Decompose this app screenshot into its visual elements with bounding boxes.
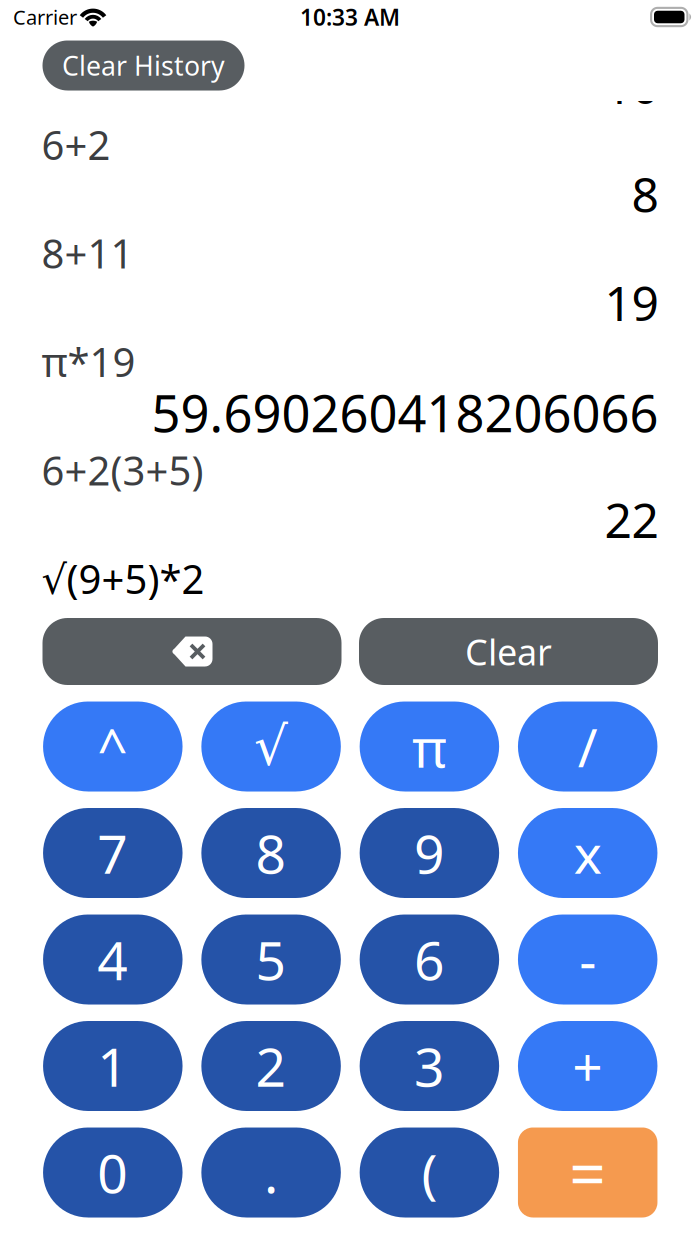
staticText: 8+11 (41, 226, 133, 280)
button[interactable]: 9 (360, 808, 499, 898)
button[interactable]: ( (360, 1127, 499, 1217)
button[interactable]: = (518, 1127, 657, 1217)
button[interactable]: / (518, 701, 657, 791)
button[interactable]: 2 (201, 1021, 341, 1111)
staticText: = (569, 1130, 606, 1215)
staticText: ^ (97, 711, 128, 782)
staticText: 4+6 (41, 9, 110, 63)
staticText: 59.690260418206066 (151, 379, 658, 446)
button[interactable]: x (518, 808, 657, 898)
button[interactable]: Clear (359, 618, 658, 685)
button[interactable]: 4 (43, 914, 183, 1004)
staticText: + (572, 1031, 603, 1101)
button[interactable]: 1 (43, 1021, 183, 1111)
staticText: 8 (631, 162, 658, 226)
staticText: x (574, 818, 602, 888)
button[interactable]: 8 (201, 808, 341, 898)
staticText: 6+2 (41, 118, 110, 171)
button[interactable]: Clear History (42, 40, 244, 90)
staticText: 22 (604, 487, 658, 551)
button[interactable]: 5 (201, 914, 341, 1004)
button[interactable]: . (201, 1127, 341, 1217)
staticText: ( (421, 1137, 437, 1208)
staticText: π*19 (41, 335, 135, 388)
staticText: Carrier (13, 4, 77, 30)
button[interactable]: Backspace (42, 618, 341, 685)
staticText: 10 (604, 53, 658, 117)
button[interactable]: + (518, 1021, 657, 1111)
button[interactable]: 3 (360, 1021, 499, 1111)
button[interactable]: 7 (43, 808, 183, 898)
button[interactable]: π (360, 701, 499, 791)
staticText: 19 (604, 270, 658, 334)
staticText: 8 (256, 818, 287, 888)
staticText: 0 (97, 1137, 128, 1208)
staticText: 9 (414, 818, 445, 888)
staticText: / (578, 711, 598, 782)
staticText: π (412, 711, 447, 782)
staticText: Clear (465, 628, 552, 675)
button[interactable]: 6 (360, 914, 499, 1004)
button[interactable]: ^ (43, 701, 183, 791)
button[interactable]: 0 (43, 1127, 183, 1217)
staticText: Clear History (62, 48, 225, 83)
staticText: √(9+5)*2 (41, 552, 204, 605)
staticText: √ (254, 716, 288, 777)
staticText: 10:33 AM (300, 2, 400, 32)
staticText: 3 (414, 1031, 445, 1101)
button[interactable]: √ (201, 701, 341, 791)
staticText: 1 (97, 1031, 128, 1101)
button[interactable]: - (518, 914, 657, 1004)
staticText: - (579, 924, 596, 995)
staticText: 5 (256, 924, 287, 995)
staticText: 6+2(3+5) (41, 443, 203, 497)
staticText: 2 (256, 1031, 287, 1101)
staticText: 7 (97, 818, 128, 888)
staticText: . (264, 1137, 278, 1208)
staticText: 6 (414, 924, 445, 995)
staticText: 4 (97, 924, 128, 995)
